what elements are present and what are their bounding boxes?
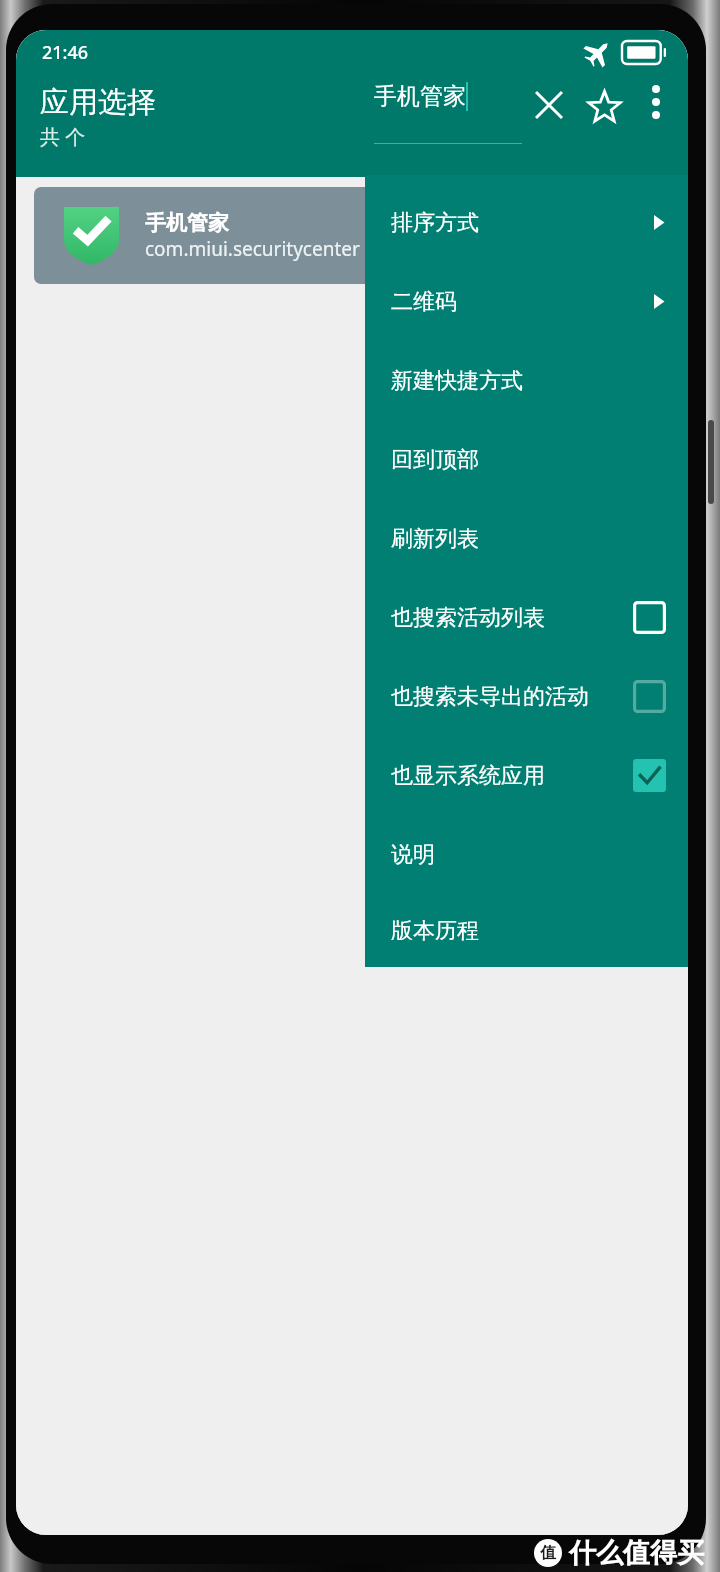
button[interactable]: 版本历程 — [365, 894, 688, 967]
staticText: 也显示系统应用 — [391, 762, 545, 790]
button[interactable]: 也搜索未导出的活动 — [365, 657, 688, 736]
button[interactable]: 手机管家 — [34, 187, 670, 284]
button[interactable]: 刷新列表 — [365, 499, 688, 578]
staticText: 排序方式 — [391, 209, 479, 237]
staticText: 二维码 — [391, 288, 457, 316]
staticText: 什么值得买 — [569, 1536, 704, 1570]
staticText: com.miui.securitycenter — [145, 236, 360, 262]
button[interactable]: 排序方式 — [365, 183, 688, 262]
button[interactable]: 也搜索活动列表 — [365, 578, 688, 657]
staticText: 手机管家 — [374, 82, 466, 111]
staticText: 共 个 — [40, 123, 86, 150]
staticText: 版本历程 — [391, 917, 479, 945]
staticText: 新建快捷方式 — [391, 367, 523, 395]
button[interactable]: 手机管家 — [374, 82, 522, 144]
staticText: 21:46 — [42, 40, 89, 65]
staticText: 值 — [540, 1543, 556, 1563]
staticText: 说明 — [391, 841, 435, 869]
staticText: 手机管家 — [145, 210, 229, 236]
button[interactable]: 说明 — [365, 815, 688, 894]
button[interactable]: 应用选择 — [40, 84, 215, 150]
staticText: 也搜索活动列表 — [391, 604, 545, 632]
button[interactable]: 也显示系统应用 — [365, 736, 688, 815]
staticText: 回到顶部 — [391, 446, 479, 474]
staticText: 也搜索未导出的活动 — [391, 683, 589, 711]
button[interactable]: Clear search — [522, 78, 576, 132]
button[interactable]: More options — [632, 78, 680, 126]
button[interactable]: 新建快捷方式 — [365, 341, 688, 420]
staticText: 应用选择 — [40, 84, 156, 121]
button[interactable]: Favorite — [576, 78, 632, 134]
button[interactable]: 回到顶部 — [365, 420, 688, 499]
staticText: 刷新列表 — [391, 525, 479, 553]
button[interactable]: 二维码 — [365, 262, 688, 341]
